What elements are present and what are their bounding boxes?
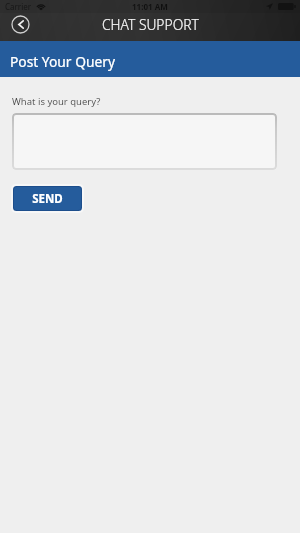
button[interactable]: Back [11, 15, 30, 34]
button[interactable] [12, 113, 277, 170]
staticText: Post Your Query [10, 52, 115, 71]
staticText: SEND [32, 191, 63, 207]
staticText: 11:01 AM [132, 1, 168, 12]
button[interactable]: SEND [11, 184, 84, 213]
staticText: Carrier [5, 1, 32, 12]
staticText: CHAT SUPPORT [102, 15, 199, 34]
staticText: What is your query? [12, 95, 101, 108]
